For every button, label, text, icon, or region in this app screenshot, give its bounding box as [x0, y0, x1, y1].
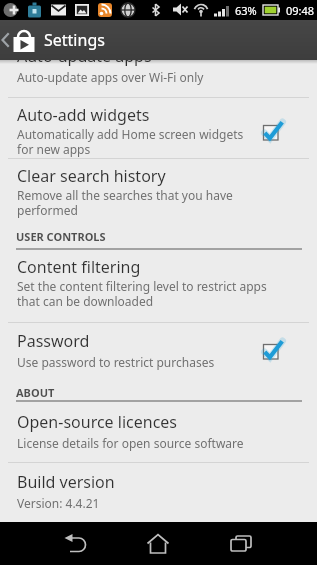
button[interactable]: Auto-add widgets	[0, 104, 317, 157]
staticText: Clear search history	[17, 165, 166, 187]
staticText: Auto-add widgets	[17, 104, 150, 126]
staticText: Version: 4.4.21	[17, 495, 100, 511]
staticText: Auto-update apps over Wi-Fi only	[17, 69, 204, 85]
button[interactable]: Open-source licences	[0, 411, 317, 451]
staticText: Build version	[17, 471, 115, 493]
button[interactable]: Password	[0, 330, 317, 370]
staticText: Password	[17, 330, 90, 352]
button[interactable]: Build version	[0, 471, 317, 511]
button[interactable]: Clear search history	[0, 165, 317, 218]
staticText: Set the content filtering level to restr…	[17, 278, 267, 309]
button[interactable]	[123, 522, 193, 565]
staticText: Content filtering	[17, 256, 141, 278]
button[interactable]	[207, 522, 277, 565]
staticText: 63%	[235, 3, 257, 18]
button[interactable]: Content filtering	[0, 256, 317, 309]
staticText: License details for open source software	[17, 435, 244, 451]
staticText: Remove all the searches that you have pe…	[17, 187, 233, 218]
staticText: Use password to restrict purchases	[17, 354, 215, 370]
staticText: Open-source licences	[17, 411, 178, 433]
button[interactable]: Settings	[0, 20, 317, 60]
staticText: USER CONTROLS	[16, 229, 106, 244]
button[interactable]	[38, 522, 108, 565]
button[interactable]: Auto-update apps	[0, 60, 317, 85]
staticText: Settings	[44, 29, 105, 51]
staticText: Auto-update apps	[17, 60, 152, 67]
staticText: Automatically add Home screen widgets fo…	[17, 126, 244, 157]
staticText: ABOUT	[16, 385, 55, 400]
staticText: 09:48	[286, 3, 315, 18]
